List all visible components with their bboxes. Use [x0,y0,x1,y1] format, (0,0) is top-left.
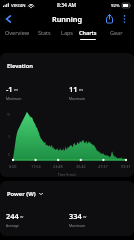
button[interactable]: Gear [107,27,125,44]
staticText: 11 [69,84,78,94]
button[interactable]: Power (W) [7,190,43,198]
staticText: 244 [6,211,19,221]
button[interactable]: Stats [35,27,54,44]
button[interactable]: Share [103,12,116,25]
button[interactable]: Charts [78,27,98,44]
staticText: Running [52,14,82,24]
staticText: Stats [38,29,51,36]
staticText: Minimum [6,96,22,101]
staticText: Elevation [7,62,33,70]
staticText: w [20,214,24,220]
staticText: Maximum [69,96,86,101]
staticText: Time (h:m:s) [58,173,76,177]
staticText: 47:37 [98,164,108,169]
staticText: 8:34 AM [57,2,77,9]
button[interactable]: More options [118,12,131,25]
staticText: m [14,87,18,93]
staticText: m [79,87,83,93]
staticText: 0 [8,152,11,157]
staticText: Average [6,223,20,228]
staticText: 11:54 [31,164,41,169]
staticText: Gear [110,29,123,36]
staticText: Maximum [69,223,86,228]
staticText: 10 [6,112,11,117]
staticText: w [83,214,87,220]
button[interactable]: Laps [58,27,75,44]
staticText: Laps [61,29,73,36]
staticText: 334 [69,211,82,221]
staticText: 23:48 [53,164,63,169]
staticText: Overview [5,29,29,36]
button[interactable]: Overview [2,27,31,44]
staticText: 35:42 [76,164,86,169]
staticText: Power (W) [7,190,36,198]
staticText: VIRGIN [11,2,26,8]
staticText: 92% [111,2,120,8]
staticText: Charts [79,29,97,36]
staticText: -1 [6,84,13,94]
staticText: 59:31 [121,164,131,169]
staticText: 0:00 [9,164,17,169]
staticText: 5 [8,134,11,139]
button[interactable]: Back [0,11,16,27]
